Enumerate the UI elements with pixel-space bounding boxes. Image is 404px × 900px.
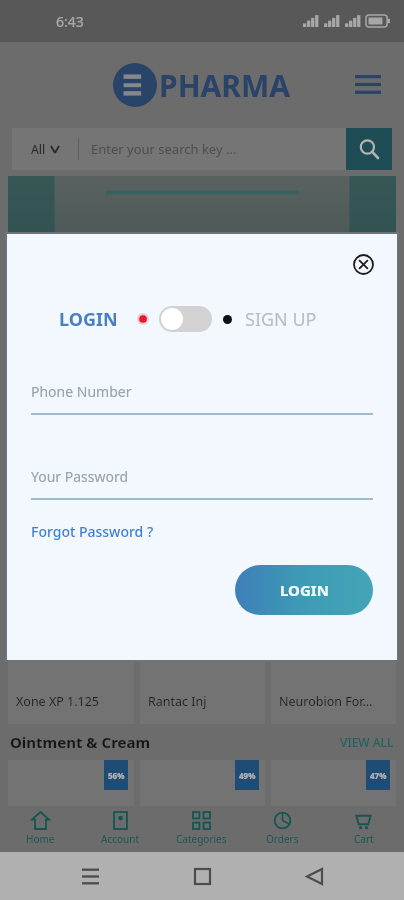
- button[interactable]: 49%: [140, 760, 265, 806]
- button[interactable]: Orders: [242, 806, 323, 852]
- staticText: PHARMA: [159, 65, 291, 106]
- staticText: All: [31, 141, 46, 157]
- button[interactable]: 47%: [271, 760, 396, 806]
- button[interactable]: Phone Number: [31, 382, 373, 415]
- staticText: LOGIN: [280, 580, 329, 600]
- button[interactable]: [159, 306, 212, 332]
- staticText: Enter your search key ...: [91, 140, 237, 158]
- button[interactable]: Enter your search key ...: [79, 128, 346, 170]
- staticText: Orders: [266, 832, 299, 846]
- staticText: Categories: [176, 832, 227, 846]
- staticText: Rantac Inj: [148, 693, 207, 710]
- button[interactable]: Close: [347, 248, 379, 280]
- button[interactable]: Neurobion For...: [271, 658, 396, 724]
- button[interactable]: Xone XP 1.125: [8, 658, 134, 724]
- button[interactable]: Recents: [68, 854, 112, 898]
- staticText: SIGN UP: [245, 307, 317, 332]
- staticText: Cart: [354, 832, 374, 846]
- button[interactable]: Search: [346, 128, 392, 170]
- button[interactable]: VIEW ALL: [340, 734, 394, 750]
- button[interactable]: Menu: [348, 65, 388, 105]
- button[interactable]: Cart: [323, 806, 404, 852]
- button[interactable]: Forgot Password ?: [31, 522, 154, 541]
- staticText: Your Password: [31, 467, 129, 486]
- button[interactable]: LOGIN: [59, 307, 118, 332]
- staticText: Home: [26, 832, 55, 846]
- staticText: Account: [101, 832, 140, 846]
- button[interactable]: LOGIN: [235, 565, 373, 615]
- button[interactable]: Home: [180, 854, 224, 898]
- staticText: Ointment & Cream: [10, 732, 151, 752]
- button[interactable]: Categories: [161, 806, 242, 852]
- button[interactable]: SIGN UP: [245, 307, 317, 332]
- button[interactable]: Rantac Inj: [140, 658, 265, 724]
- button[interactable]: Home: [0, 806, 80, 852]
- staticText: 49%: [239, 770, 256, 781]
- button[interactable]: [8, 176, 396, 296]
- staticText: Forgot Password ?: [31, 522, 154, 541]
- button[interactable]: Back: [292, 854, 336, 898]
- button[interactable]: 56%: [8, 760, 134, 806]
- button[interactable]: All: [12, 128, 78, 170]
- staticText: Xone XP 1.125: [16, 693, 100, 710]
- staticText: Neurobion For...: [279, 693, 373, 710]
- button[interactable]: Your Password: [31, 467, 373, 500]
- staticText: VIEW ALL: [340, 734, 394, 750]
- staticText: 47%: [370, 770, 387, 781]
- staticText: 6:43: [56, 12, 84, 31]
- button[interactable]: Account: [80, 806, 161, 852]
- staticText: Phone Number: [31, 382, 132, 401]
- staticText: LOGIN: [59, 307, 118, 332]
- staticText: 56%: [108, 770, 125, 781]
